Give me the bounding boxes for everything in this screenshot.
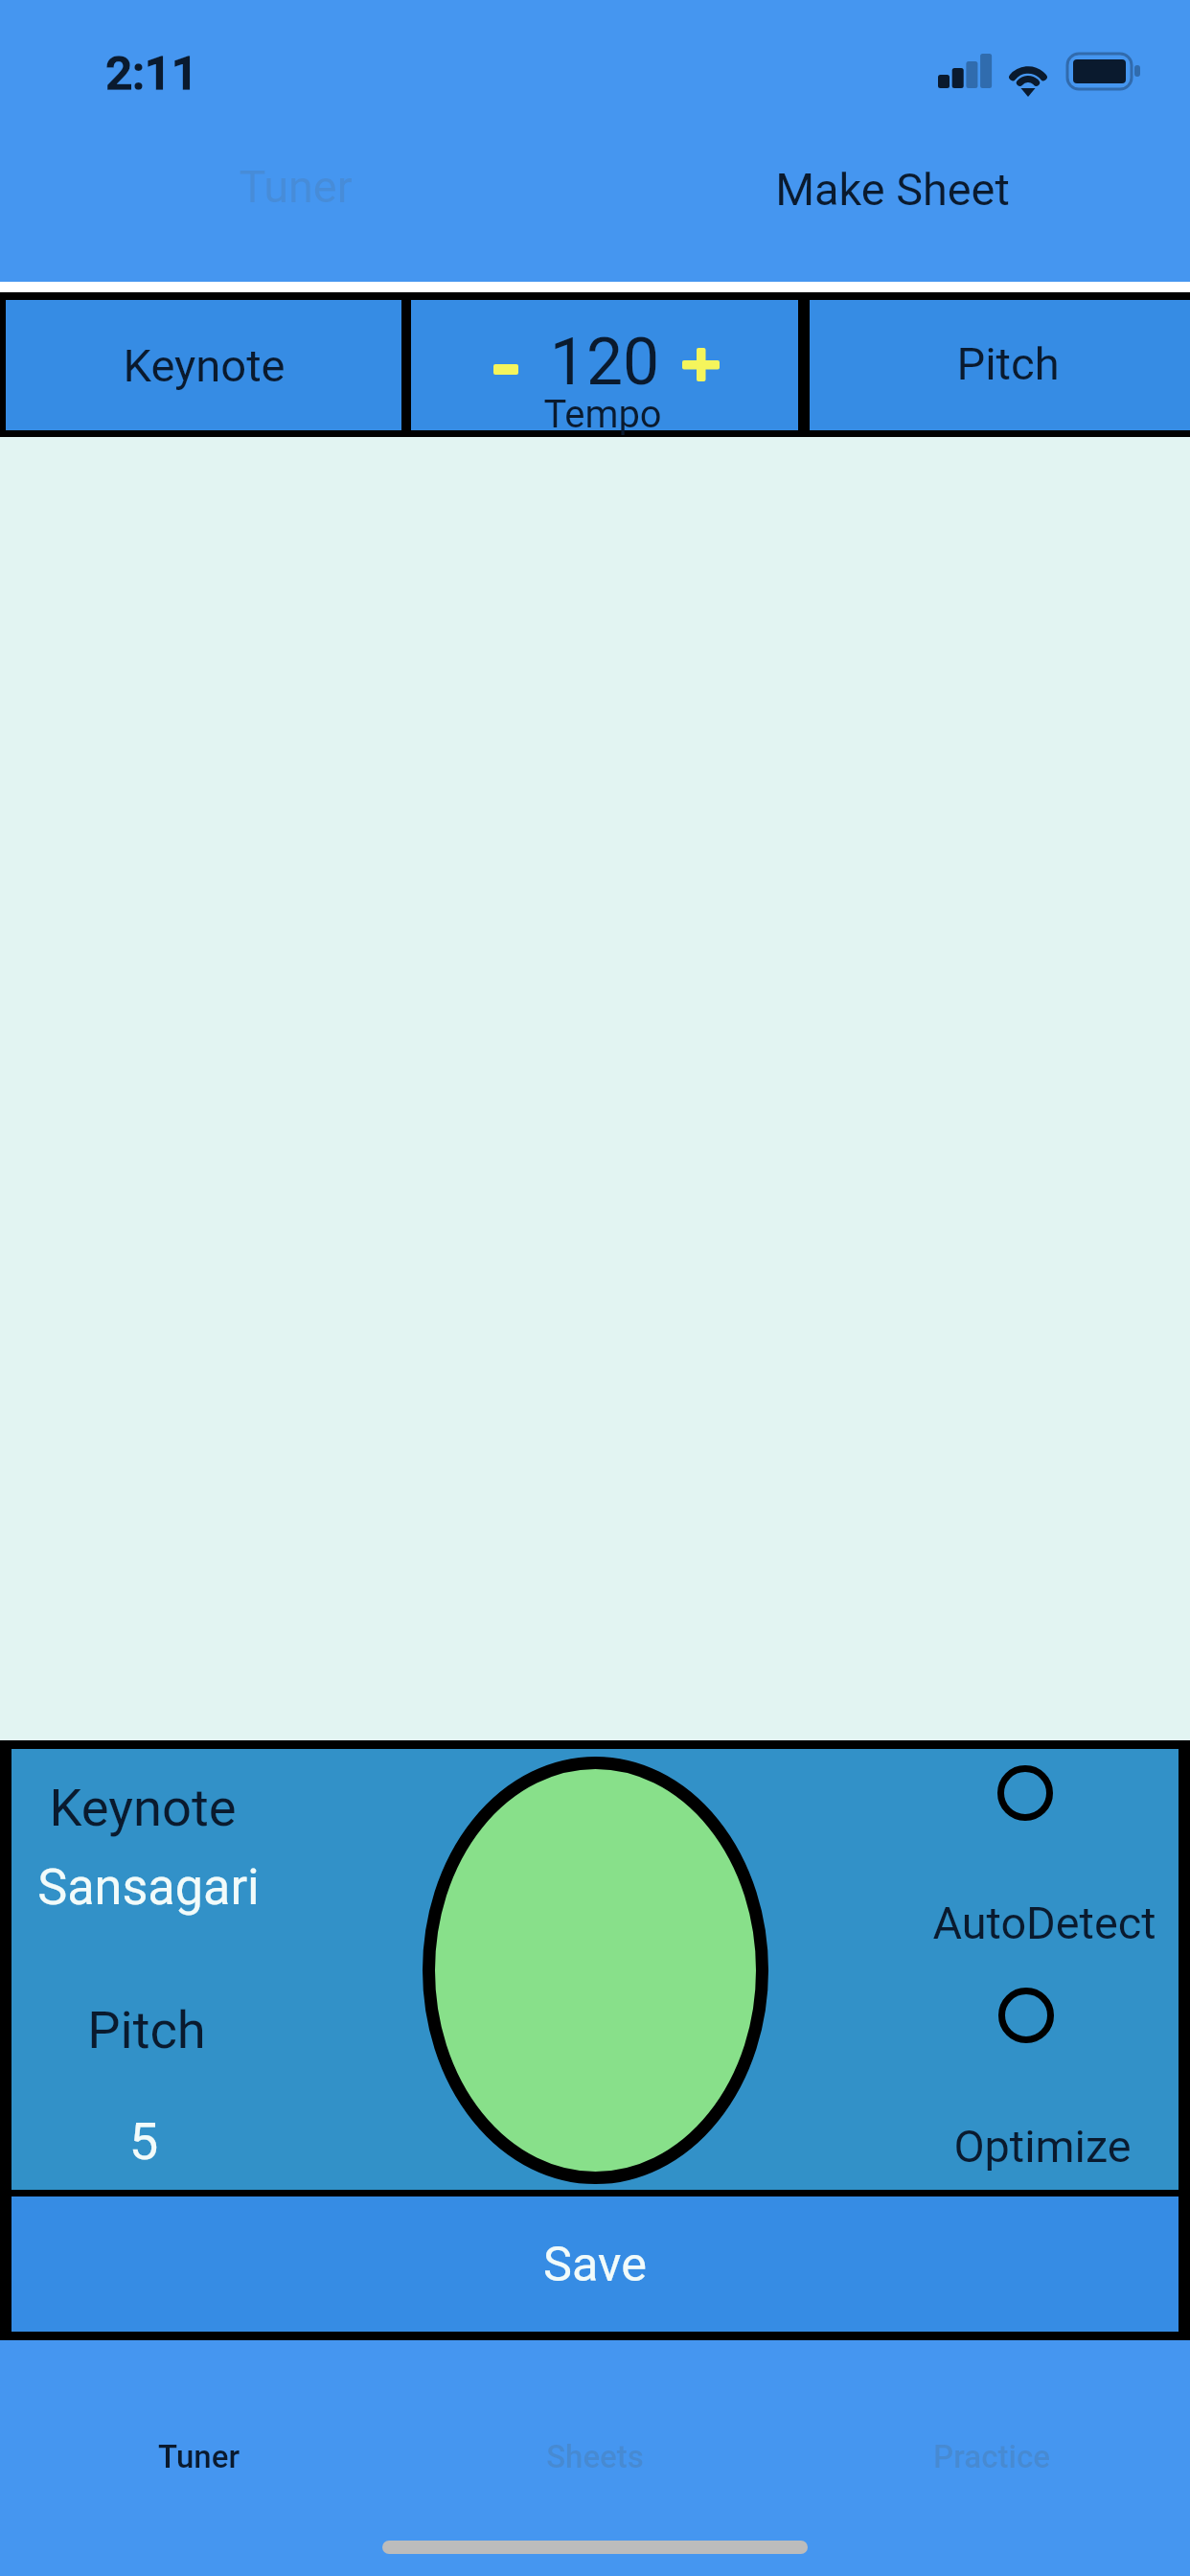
button[interactable]: Tuner indicator [423, 1757, 768, 2184]
staticText: 2:11 [105, 46, 198, 101]
button[interactable]: Optimize [900, 1969, 1181, 2190]
button[interactable]: Keynote [6, 300, 401, 430]
button[interactable]: Save [11, 2196, 1179, 2332]
staticText: Save [543, 2236, 647, 2292]
staticText: 120 [0, 324, 1190, 400]
staticText: AutoDetect [0, 1897, 1190, 1950]
button[interactable]: Pitch [23, 1989, 291, 2180]
button[interactable]: Increase tempo [665, 329, 738, 403]
button[interactable]: Sheets [397, 2419, 793, 2494]
staticText: Sheets [546, 2438, 644, 2475]
button[interactable]: Pitch [810, 300, 1190, 430]
staticText: Pitch [0, 2000, 1190, 2061]
staticText: Keynote [0, 1778, 1190, 1839]
staticText: Tuner [158, 2438, 240, 2475]
button[interactable]: Decrease tempo [469, 334, 542, 403]
staticText: Keynote [0, 339, 1190, 392]
button[interactable]: AutoDetect [900, 1753, 1181, 1954]
button[interactable]: Tuner [0, 2419, 397, 2494]
staticText: Optimize [0, 2121, 1190, 2173]
staticText: Pitch [0, 337, 1190, 390]
staticText: 5 [0, 2111, 1190, 2173]
staticText: Practice [933, 2438, 1050, 2475]
staticText: Tuner [239, 161, 353, 214]
button[interactable]: Practice [793, 2419, 1190, 2494]
staticText: Sansagari [0, 1858, 1190, 1917]
button[interactable]: Keynote [23, 1760, 291, 1938]
button[interactable]: Make Sheet [748, 147, 1036, 233]
staticText: Tempo [0, 392, 1190, 437]
button[interactable]: Tuner [192, 144, 399, 230]
staticText: Make Sheet [775, 164, 1010, 217]
